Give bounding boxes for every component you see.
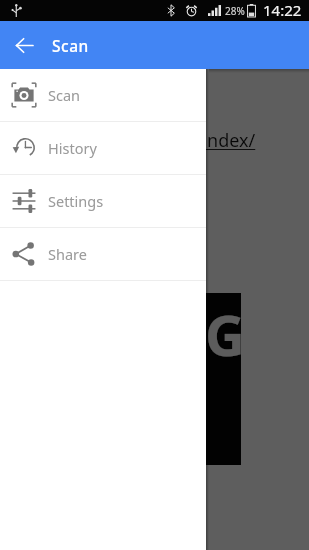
staticText: G	[205, 297, 245, 372]
button[interactable]: Share	[0, 228, 206, 280]
staticText: Settings	[48, 191, 104, 211]
staticText: Scan	[48, 85, 81, 105]
staticText: Scan	[52, 35, 89, 56]
button[interactable]: Settings	[0, 175, 206, 227]
button[interactable]: History	[0, 122, 206, 174]
staticText: 28%	[225, 4, 245, 18]
staticText: History	[48, 138, 97, 158]
staticText: http://example.com/index/	[29, 128, 256, 153]
staticText: 14:22	[263, 0, 302, 20]
staticText: Share	[48, 244, 87, 264]
button[interactable]: Scan	[0, 69, 206, 121]
button[interactable]: Back	[8, 29, 40, 61]
